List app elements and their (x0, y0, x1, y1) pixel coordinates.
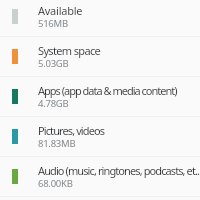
staticText: 516MB (38, 17, 68, 30)
staticText: 68.00KB (38, 177, 73, 190)
button[interactable]: System space (0, 40, 200, 80)
staticText: Available (38, 3, 83, 18)
staticText: Pictures, videos (38, 123, 105, 138)
staticText: 81.83MB (38, 137, 76, 150)
button[interactable]: Apps (app data & media content) (0, 80, 200, 120)
staticText: Audio (music, ringtones, podcasts, et.. (38, 163, 200, 178)
staticText: 5.03GB (38, 57, 69, 70)
staticText: System space (38, 43, 101, 58)
button[interactable]: Available (0, 0, 200, 40)
staticText: 4.78GB (38, 97, 69, 110)
button[interactable]: Pictures, videos (0, 120, 200, 160)
staticText: Apps (app data & media content) (38, 83, 177, 98)
button[interactable]: Audio (music, ringtones, podcasts, et.. (0, 160, 200, 200)
